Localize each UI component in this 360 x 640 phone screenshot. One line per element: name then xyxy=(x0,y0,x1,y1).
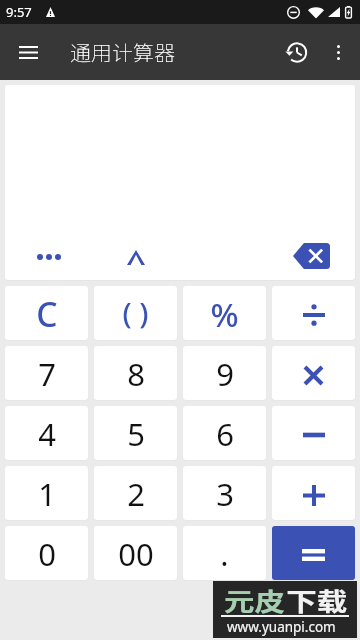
button[interactable]: Plus xyxy=(272,466,355,520)
button[interactable]: 4 xyxy=(5,406,88,460)
staticText: 7 xyxy=(38,353,56,395)
button[interactable]: ( ) xyxy=(94,286,177,340)
button[interactable]: 00 xyxy=(94,526,177,580)
button[interactable]: History xyxy=(277,28,316,76)
staticText: 9:57 xyxy=(6,3,32,21)
button[interactable]: % xyxy=(183,286,266,340)
button[interactable]: Backspace xyxy=(267,232,355,280)
button[interactable]: Multiply xyxy=(272,346,355,400)
staticText: 通用计算器 xyxy=(70,37,175,67)
staticText: . xyxy=(220,533,229,575)
button[interactable]: Open navigation menu xyxy=(4,28,52,76)
staticText: % xyxy=(210,292,239,337)
staticText: ( ) xyxy=(122,292,149,332)
staticText: 4 xyxy=(38,413,56,455)
button[interactable]: 7 xyxy=(5,346,88,400)
staticText: 00 xyxy=(118,533,154,575)
button[interactable]: . xyxy=(183,526,266,580)
staticText: C xyxy=(36,291,58,337)
button[interactable]: 6 xyxy=(183,406,266,460)
staticText: 元皮 xyxy=(224,582,286,618)
button[interactable]: Minus xyxy=(272,406,355,460)
staticText: 5 xyxy=(127,413,145,455)
staticText: 0 xyxy=(38,533,56,575)
button[interactable]: 8 xyxy=(94,346,177,400)
button[interactable]: More functions xyxy=(5,232,92,280)
button[interactable]: 5 xyxy=(94,406,177,460)
button[interactable]: Divide xyxy=(272,286,355,340)
button[interactable]: 2 xyxy=(94,466,177,520)
staticText: 下载 xyxy=(286,582,348,618)
button[interactable]: 1 xyxy=(5,466,88,520)
staticText: 8 xyxy=(127,353,145,395)
button[interactable]: 0 xyxy=(5,526,88,580)
button[interactable]: More options xyxy=(316,30,360,74)
staticText: 9 xyxy=(216,353,234,395)
staticText: 1 xyxy=(38,473,56,515)
button[interactable]: Equals xyxy=(272,526,355,580)
staticText: 6 xyxy=(216,413,234,455)
staticText: 2 xyxy=(127,473,145,515)
button[interactable]: C xyxy=(5,286,88,340)
staticText: www.yuanpi.com xyxy=(227,618,336,636)
button[interactable]: 3 xyxy=(183,466,266,520)
button[interactable]: 9 xyxy=(183,346,266,400)
button[interactable]: Power xyxy=(92,232,179,280)
staticText: 3 xyxy=(216,473,234,515)
